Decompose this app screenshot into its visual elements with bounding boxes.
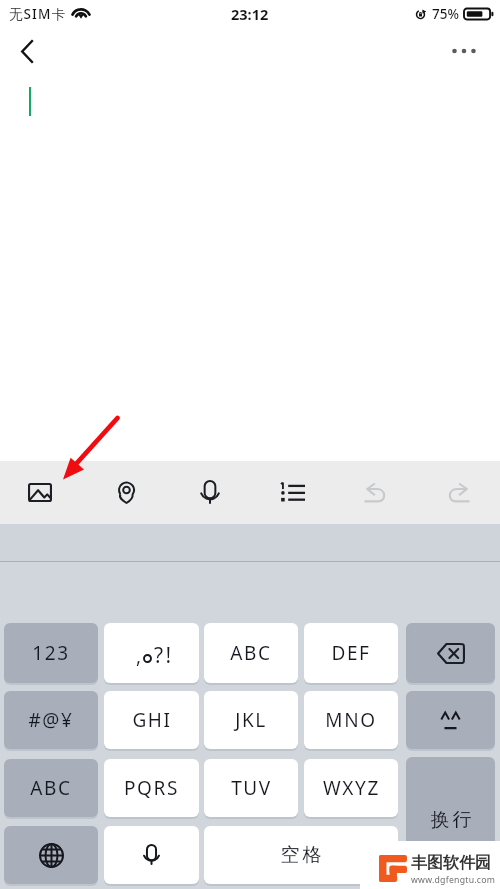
button[interactable]: 123 [4, 623, 98, 683]
button[interactable]: TUV [204, 759, 298, 817]
staticText: WXYZ [323, 775, 380, 801]
button[interactable]: Back [0, 28, 48, 73]
staticText: DEF [331, 640, 371, 666]
button[interactable]: More options [448, 28, 500, 73]
staticText: 丰图软件园 [411, 853, 491, 873]
button[interactable]: ABC [204, 623, 298, 683]
button[interactable]: Redo [417, 461, 500, 524]
button[interactable]: DEF [304, 623, 398, 683]
button[interactable]: Backspace [406, 623, 495, 683]
button[interactable]: Ordered list [251, 461, 334, 524]
button[interactable]: MNO [304, 691, 398, 749]
staticText: 123 [32, 640, 70, 666]
staticText: 空格 [279, 843, 323, 867]
staticText: ?! [154, 641, 174, 670]
staticText: www.dgfengtu.com [411, 874, 496, 886]
button[interactable]: JKL [204, 691, 298, 749]
staticText: PQRS [124, 775, 179, 801]
button[interactable]: Voice input [168, 461, 251, 524]
button[interactable]: #@¥ [4, 691, 98, 749]
button[interactable]: Switch language [4, 826, 98, 884]
staticText: 23:12 [231, 4, 269, 24]
staticText: JKL [235, 707, 267, 733]
button[interactable]: Location [84, 461, 168, 524]
button[interactable]: Voice input [104, 826, 199, 884]
button[interactable]: 换行 [406, 757, 495, 884]
button[interactable]: Undo [334, 461, 417, 524]
staticText: ABC [30, 775, 72, 801]
staticText: TUV [231, 775, 272, 801]
button[interactable]: PQRS [104, 759, 199, 817]
staticText: MNO [325, 707, 377, 733]
button[interactable]: GHI [104, 691, 199, 749]
staticText: 无SIM卡 [9, 5, 67, 23]
button[interactable]: Insert image [0, 461, 84, 524]
staticText: 75% [432, 5, 459, 23]
staticText: ABC [230, 640, 272, 666]
button[interactable]: WXYZ [304, 759, 398, 817]
staticText: , [136, 643, 142, 669]
button[interactable] [406, 691, 495, 749]
staticText: #@¥ [28, 707, 74, 733]
staticText: GHI [132, 707, 172, 733]
button[interactable]: ABC [4, 759, 98, 817]
button[interactable]: 空格 [204, 826, 398, 884]
button[interactable]: , [104, 623, 199, 683]
staticText: 换行 [429, 808, 473, 832]
